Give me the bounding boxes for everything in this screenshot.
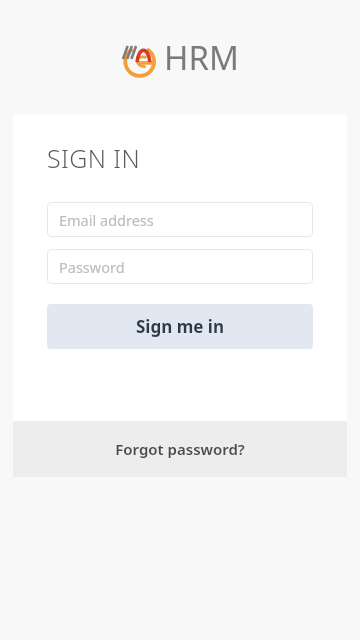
- button[interactable]: Forgot password?: [13, 421, 347, 477]
- other: HRM logo: [121, 41, 157, 77]
- staticText: Email address: [59, 210, 154, 230]
- button[interactable]: Sign me in: [47, 304, 313, 349]
- staticText: HRM: [164, 35, 239, 80]
- staticText: Forgot password?: [115, 439, 245, 459]
- staticText: Password: [59, 257, 125, 277]
- button[interactable]: Email address: [47, 202, 313, 237]
- staticText: SIGN IN: [47, 141, 141, 175]
- staticText: Sign me in: [136, 315, 224, 338]
- button[interactable]: Password: [47, 249, 313, 284]
